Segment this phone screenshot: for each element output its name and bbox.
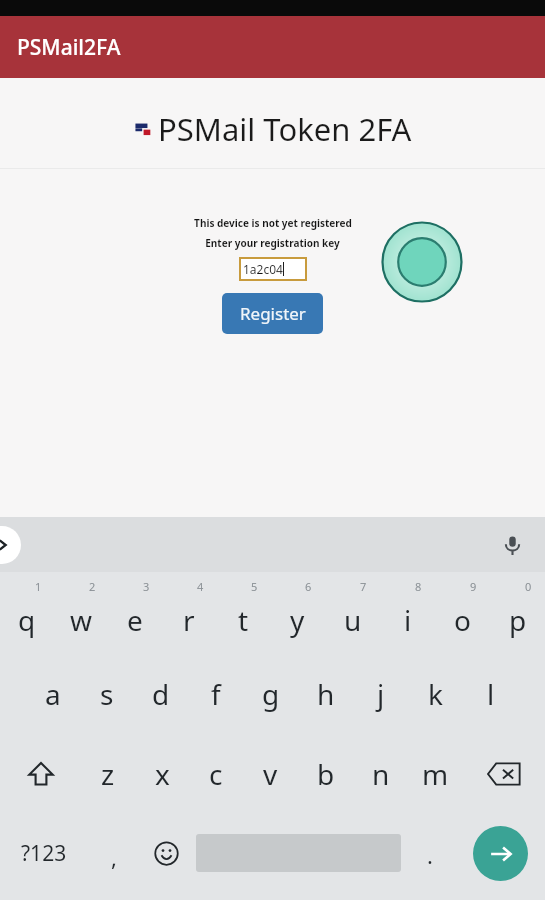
staticText: w [70, 601, 93, 639]
button[interactable]: 1a2c04 [239, 257, 307, 281]
staticText: 6 [305, 579, 312, 594]
staticText: m [422, 755, 449, 793]
staticText: PSMail2FA [17, 33, 121, 62]
button[interactable]: 3 [108, 572, 162, 654]
button[interactable] [193, 814, 404, 892]
staticText: b [317, 755, 335, 793]
button[interactable]: b [298, 734, 353, 814]
staticText: c [209, 755, 223, 793]
staticText: , [111, 842, 117, 872]
button[interactable]: 0 [490, 572, 545, 654]
button[interactable]: Token indicator [381, 221, 463, 303]
staticText: k [428, 675, 443, 713]
button[interactable]: Shift [0, 734, 81, 814]
button[interactable]: c [189, 734, 243, 814]
staticText: h [317, 675, 335, 713]
button[interactable]: s [80, 654, 134, 734]
staticText: . [427, 840, 433, 870]
staticText: 0 [525, 579, 532, 594]
button[interactable]: 2 [54, 572, 108, 654]
button[interactable]: Voice input [491, 524, 533, 566]
staticText: 2 [89, 579, 96, 594]
button[interactable]: g [243, 654, 298, 734]
staticText: Enter your registration key [205, 236, 340, 250]
staticText: u [344, 601, 362, 639]
button[interactable]: 9 [435, 572, 490, 654]
staticText: 1a2c04 [243, 261, 283, 277]
button[interactable]: Enter [455, 814, 545, 892]
staticText: This device is not yet registered [194, 216, 352, 230]
button[interactable]: z [81, 734, 135, 814]
staticText: PSMail Token 2FA [158, 108, 412, 150]
button[interactable]: a [26, 654, 80, 734]
button[interactable]: Emoji [139, 814, 193, 892]
staticText: r [183, 601, 195, 639]
staticText: z [101, 755, 115, 793]
button[interactable]: f [188, 654, 243, 734]
button[interactable]: d [134, 654, 188, 734]
staticText: 7 [360, 579, 367, 594]
staticText: x [155, 755, 170, 793]
staticText: q [18, 601, 36, 639]
button[interactable]: h [298, 654, 353, 734]
button[interactable]: k [408, 654, 463, 734]
button[interactable]: 1 [0, 572, 54, 654]
staticText: 5 [251, 579, 258, 594]
staticText: p [509, 601, 527, 639]
staticText: a [45, 675, 61, 713]
staticText: l [487, 675, 495, 713]
staticText: y [290, 601, 305, 639]
staticText: 8 [415, 579, 422, 594]
staticText: Register [240, 302, 306, 325]
staticText: e [127, 601, 143, 639]
button[interactable]: 6 [270, 572, 325, 654]
button[interactable]: v [243, 734, 298, 814]
button[interactable]: 4 [162, 572, 216, 654]
button[interactable]: Register [222, 293, 323, 334]
button[interactable]: m [408, 734, 463, 814]
staticText: g [262, 675, 280, 713]
staticText: o [454, 601, 471, 639]
button[interactable]: ?123 [0, 814, 88, 892]
button[interactable]: l [463, 654, 518, 734]
staticText: 9 [470, 579, 477, 594]
button[interactable]: 5 [216, 572, 270, 654]
staticText: ?123 [21, 839, 67, 868]
staticText: d [152, 675, 170, 713]
staticText: 1 [35, 579, 42, 594]
button[interactable]: Expand suggestions [0, 526, 21, 564]
staticText: n [372, 755, 390, 793]
button[interactable]: . [404, 814, 455, 892]
button[interactable]: , [88, 814, 139, 892]
button[interactable]: n [353, 734, 408, 814]
staticText: j [377, 675, 385, 713]
button[interactable]: 8 [380, 572, 435, 654]
staticText: t [238, 601, 249, 639]
staticText: s [100, 675, 114, 713]
staticText: f [211, 675, 221, 713]
button[interactable]: x [135, 734, 189, 814]
staticText: 4 [197, 579, 204, 594]
button[interactable]: j [353, 654, 408, 734]
staticText: 3 [143, 579, 150, 594]
button[interactable]: Backspace [463, 734, 545, 814]
button[interactable]: 7 [325, 572, 380, 654]
staticText: v [263, 755, 278, 793]
staticText: i [404, 601, 412, 639]
